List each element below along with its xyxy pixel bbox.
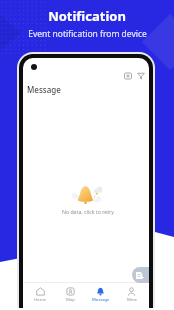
staticText: Message: [92, 297, 110, 303]
button[interactable]: Home: [25, 282, 55, 308]
button[interactable]: Mine: [116, 282, 147, 308]
button[interactable]: Scan device: [124, 72, 132, 80]
staticText: No data, click to retry: [62, 208, 114, 215]
staticText: Mine: [127, 297, 137, 303]
staticText: Map: [66, 297, 75, 303]
staticText: Notification: [48, 7, 126, 25]
button[interactable]: Message: [85, 282, 116, 308]
button[interactable]: Filter: [137, 72, 145, 80]
button[interactable]: Map: [55, 282, 85, 308]
staticText: Event notification from device: [28, 28, 147, 40]
staticText: Message: [27, 84, 61, 95]
staticText: Home: [34, 297, 46, 303]
button[interactable]: Notes: [132, 267, 149, 283]
